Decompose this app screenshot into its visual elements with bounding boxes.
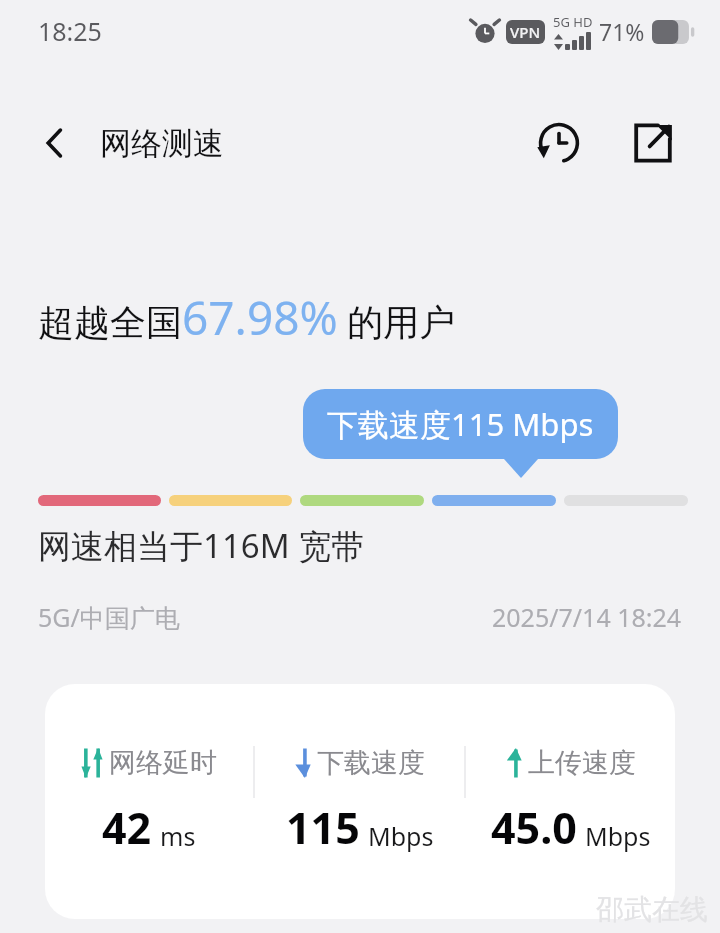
staticText: Mbps: [585, 819, 651, 853]
staticText: Mbps: [368, 819, 434, 853]
staticText: 网络测速: [100, 124, 224, 163]
staticText: 超越全国67.98% 的用户: [38, 286, 456, 349]
staticText: 上传速度: [528, 746, 636, 780]
staticText: 42: [102, 798, 152, 857]
staticText: 邵武在线: [596, 892, 708, 927]
staticText: 45.0: [491, 798, 577, 857]
staticText: 网速相当于116M 宽带: [38, 523, 365, 568]
button[interactable]: Back: [26, 114, 84, 172]
staticText: 下载速度: [317, 746, 425, 780]
staticText: 2025/7/14 18:24: [492, 600, 682, 634]
staticText: 18:25: [38, 14, 102, 48]
button[interactable]: 网络延时: [45, 684, 675, 919]
staticText: ms: [160, 819, 196, 853]
staticText: 5G/中国广电: [38, 600, 180, 634]
staticText: 5G HD: [553, 13, 593, 31]
staticText: 71%: [599, 16, 645, 47]
button[interactable]: 网络延时: [45, 746, 253, 857]
staticText: 网络延时: [109, 746, 217, 780]
button[interactable]: 下载速度: [255, 746, 464, 857]
staticText: 115: [286, 798, 360, 857]
button[interactable]: History: [528, 112, 590, 174]
staticText: VPN: [510, 22, 541, 42]
button[interactable]: 上传速度: [466, 746, 675, 857]
staticText: 下载速度115 Mbps: [327, 403, 594, 445]
button[interactable]: Share: [622, 112, 684, 174]
